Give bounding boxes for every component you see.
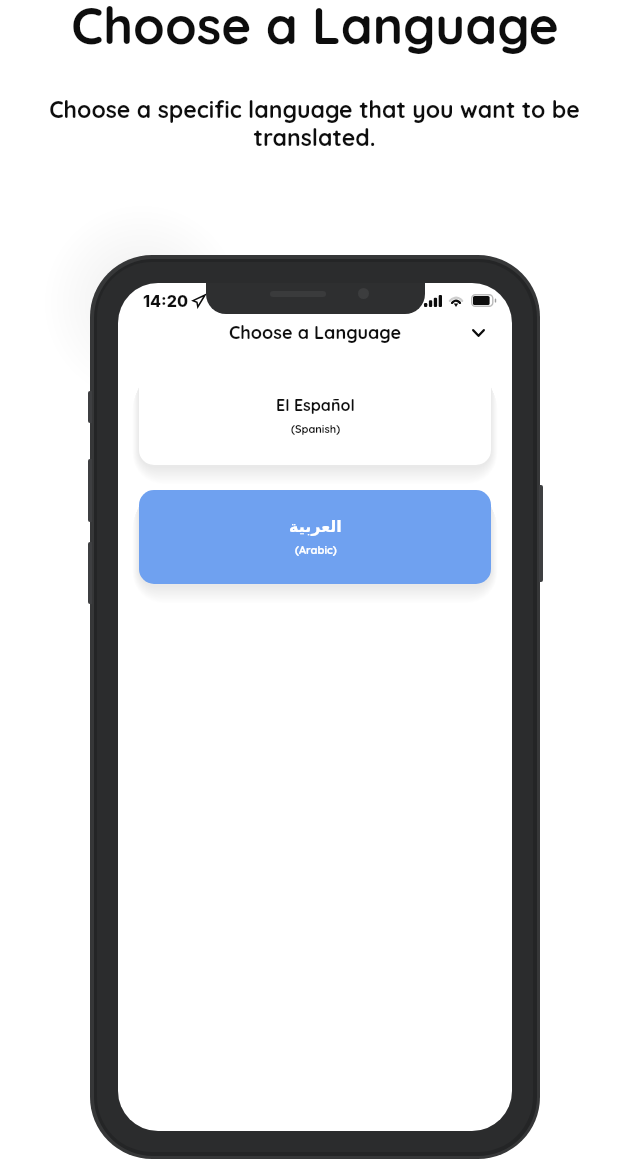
staticText: (Spanish)	[291, 422, 341, 436]
staticText: El Español	[276, 395, 355, 415]
staticText: Choose a specific language that you want…	[42, 95, 587, 152]
staticText: 14:20	[143, 291, 188, 310]
button[interactable]: العربية	[139, 490, 491, 584]
staticText: Choose a Language	[71, 0, 559, 57]
button[interactable]: El Español	[139, 371, 491, 465]
staticText: (Arabic)	[295, 543, 337, 557]
staticText: العربية	[289, 517, 342, 536]
button[interactable]: Collapse	[460, 315, 496, 351]
staticText: Choose a Language	[229, 321, 402, 344]
